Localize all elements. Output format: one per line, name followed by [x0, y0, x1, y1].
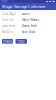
staticText: DETAILS: [3, 40, 12, 43]
staticText: Total Magic: [2, 12, 16, 16]
staticText: Tables Names: [22, 18, 39, 22]
button[interactable]: DETAILS: [2, 39, 13, 44]
staticText: Total Life: [2, 18, 14, 22]
staticText: Extent: [22, 12, 30, 16]
staticText: Basic Attrs: [2, 24, 15, 28]
staticText: 9:41: [1, 0, 8, 3]
staticText: Magic Storage Collection: [2, 4, 45, 9]
staticText: Subs Total: [22, 30, 35, 34]
staticText: RESET: [18, 40, 24, 43]
staticText: Modules: [2, 30, 14, 34]
staticText: Device Arch: [22, 24, 37, 28]
button[interactable]: RESET: [15, 39, 27, 44]
